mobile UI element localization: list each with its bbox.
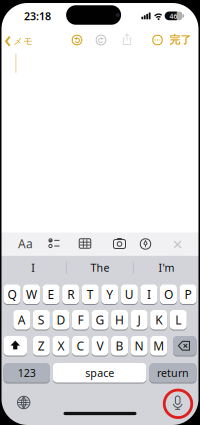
button[interactable]: Y: [101, 284, 118, 305]
staticText: H: [115, 312, 124, 328]
staticText: I: [31, 260, 35, 275]
staticText: I'm: [159, 260, 175, 275]
button[interactable]: P: [179, 284, 196, 305]
button[interactable]: E: [43, 284, 60, 305]
button[interactable]: R: [62, 284, 79, 305]
staticText: T: [87, 286, 94, 302]
button[interactable]: return: [149, 363, 196, 383]
staticText: A: [18, 312, 26, 328]
button[interactable]: C: [72, 336, 89, 356]
button[interactable]: Delete: [173, 336, 196, 356]
button[interactable]: Dictation: [171, 396, 184, 410]
staticText: C: [76, 338, 84, 354]
staticText: I: [147, 286, 151, 302]
staticText: X: [57, 338, 64, 354]
staticText: F: [77, 312, 83, 328]
button[interactable]: space: [53, 363, 146, 383]
staticText: E: [48, 286, 55, 302]
button[interactable]: X: [52, 336, 69, 356]
button[interactable]: More: [152, 35, 163, 45]
staticText: O: [164, 286, 173, 302]
button[interactable]: U: [121, 284, 138, 305]
button[interactable]: Next Keyboard: [17, 396, 30, 409]
staticText: G: [95, 312, 104, 328]
staticText: 23:18: [24, 9, 51, 23]
button[interactable]: O: [160, 284, 177, 305]
button[interactable]: Format: [18, 235, 33, 251]
staticText: D: [56, 312, 65, 328]
button[interactable]: I: [3, 258, 63, 276]
button[interactable]: Undo: [72, 35, 82, 45]
button[interactable]: S: [33, 310, 50, 330]
button[interactable]: J: [131, 310, 148, 330]
staticText: 123: [18, 366, 36, 380]
button[interactable]: I'm: [137, 258, 197, 276]
staticText: J: [138, 312, 141, 328]
button[interactable]: Camera: [113, 238, 126, 250]
staticText: 完了: [169, 33, 191, 46]
button[interactable]: M: [150, 336, 167, 356]
staticText: メモ: [13, 35, 33, 47]
button[interactable]: F: [72, 310, 89, 330]
staticText: P: [184, 286, 191, 302]
button[interactable]: T: [82, 284, 99, 305]
staticText: return: [157, 366, 189, 380]
button[interactable]: Table: [79, 239, 91, 248]
button[interactable]: Q: [3, 284, 20, 305]
button[interactable]: 123: [3, 363, 50, 383]
staticText: Aa: [18, 235, 33, 251]
button[interactable]: Dismiss Keyboard: [173, 240, 181, 248]
staticText: Q: [7, 286, 16, 302]
staticText: K: [155, 312, 162, 328]
button[interactable]: Checklist: [48, 238, 60, 249]
button[interactable]: The: [70, 258, 130, 276]
staticText: 46: [169, 12, 177, 21]
staticText: W: [26, 286, 37, 302]
staticText: S: [38, 312, 45, 328]
button[interactable]: B: [111, 336, 128, 356]
staticText: U: [125, 286, 134, 302]
staticText: R: [67, 286, 74, 302]
button[interactable]: Markup: [140, 238, 151, 250]
staticText: V: [96, 338, 103, 354]
button[interactable]: Shift: [3, 336, 27, 356]
button[interactable]: 完了: [169, 33, 191, 46]
button[interactable]: Share: [122, 33, 131, 45]
button[interactable]: Redo: [96, 35, 106, 45]
staticText: Z: [38, 338, 45, 354]
button[interactable]: D: [52, 310, 69, 330]
button[interactable]: V: [91, 336, 108, 356]
staticText: B: [116, 338, 124, 354]
button[interactable]: Z: [33, 336, 50, 356]
button[interactable]: L: [170, 310, 187, 330]
button[interactable]: I: [140, 284, 157, 305]
button[interactable]: W: [23, 284, 40, 305]
staticText: The: [90, 260, 109, 275]
staticText: N: [135, 338, 144, 354]
button[interactable]: H: [111, 310, 128, 330]
button[interactable]: N: [131, 336, 148, 356]
staticText: M: [153, 338, 164, 354]
button[interactable]: Back to Notes: [5, 33, 37, 49]
staticText: space: [85, 366, 114, 380]
staticText: L: [175, 312, 181, 328]
button[interactable]: A: [13, 310, 30, 330]
button[interactable]: G: [91, 310, 108, 330]
button[interactable]: K: [150, 310, 167, 330]
staticText: Y: [106, 286, 113, 302]
